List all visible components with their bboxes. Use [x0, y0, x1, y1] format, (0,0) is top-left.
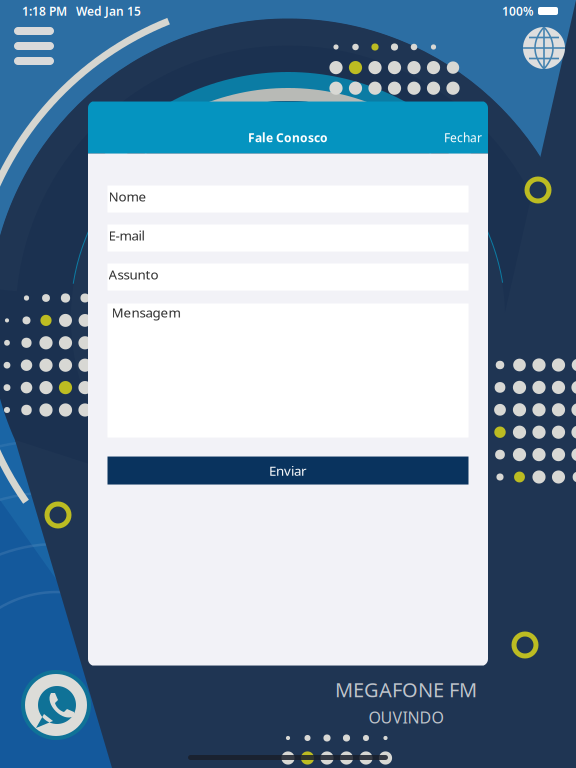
button[interactable]: Enviar [107, 456, 468, 484]
staticText: Nome [108, 187, 146, 205]
staticText: Mensagem [111, 303, 180, 321]
button[interactable]: Menu [6, 22, 62, 70]
staticText: MEGAFONE FM [335, 676, 477, 703]
staticText: 1:18 PM [22, 3, 67, 19]
staticText: OUVINDO [368, 707, 443, 728]
button[interactable]: Idioma [518, 22, 570, 74]
staticText: Assunto [108, 265, 158, 283]
staticText: Fechar [444, 129, 482, 145]
staticText: Fale Conosco [248, 129, 328, 145]
staticText: E-mail [108, 226, 144, 244]
staticText: Enviar [269, 462, 307, 479]
button[interactable]: Fechar [428, 124, 488, 150]
staticText: 100% [502, 3, 534, 19]
staticText: Wed Jan 15 [67, 3, 141, 19]
button[interactable]: WhatsApp [17, 666, 95, 744]
